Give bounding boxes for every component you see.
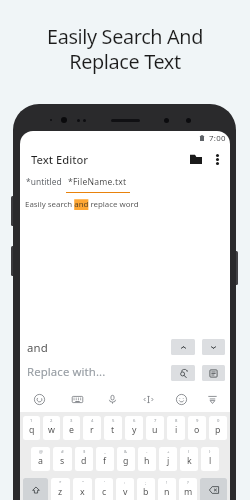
button[interactable]: Text editing bbox=[140, 391, 156, 407]
button[interactable]: Text Editor bbox=[31, 152, 89, 167]
button[interactable]: ; bbox=[137, 478, 155, 500]
button[interactable]: 9 bbox=[188, 416, 206, 440]
button[interactable]: - bbox=[138, 447, 156, 471]
button[interactable]: Voice input bbox=[104, 391, 120, 407]
staticText: 7:00 bbox=[209, 133, 226, 144]
staticText: " bbox=[82, 480, 84, 486]
staticText: : bbox=[124, 480, 126, 486]
staticText: h bbox=[144, 455, 150, 467]
staticText: 2 bbox=[50, 418, 53, 424]
staticText: *untitled bbox=[26, 176, 62, 187]
staticText: 4 bbox=[91, 418, 94, 424]
button[interactable]: Replace with... bbox=[27, 364, 106, 380]
staticText: a bbox=[38, 455, 43, 467]
staticText: w bbox=[48, 424, 55, 436]
staticText: u bbox=[152, 424, 158, 436]
button[interactable]: Backspace bbox=[200, 478, 227, 500]
staticText: 5 bbox=[112, 418, 115, 424]
button[interactable]: ! bbox=[158, 478, 176, 500]
button[interactable]: ( bbox=[180, 447, 198, 471]
staticText: i bbox=[175, 424, 178, 436]
staticText: ; bbox=[145, 480, 147, 486]
button[interactable]: 1 bbox=[23, 416, 40, 440]
staticText: Easily search and replace word bbox=[25, 199, 139, 210]
staticText: 1 bbox=[30, 418, 33, 424]
button[interactable]: 8 bbox=[167, 416, 185, 440]
staticText: @ bbox=[39, 449, 43, 455]
staticText: s bbox=[60, 455, 65, 467]
button[interactable]: *FileName.txt bbox=[68, 176, 132, 193]
staticText: v bbox=[123, 486, 128, 498]
button[interactable]: Open file bbox=[187, 150, 205, 168]
staticText: n bbox=[164, 486, 170, 498]
button[interactable]: Keyboard layout bbox=[69, 391, 85, 407]
button[interactable]: 0 bbox=[209, 416, 227, 440]
button[interactable]: 4 bbox=[83, 416, 101, 440]
staticText: _ bbox=[104, 449, 106, 455]
staticText: 6 bbox=[133, 418, 136, 424]
staticText: e bbox=[69, 424, 74, 436]
button[interactable]: *untitled bbox=[26, 176, 62, 187]
button[interactable]: _ bbox=[96, 447, 114, 471]
button[interactable]: and bbox=[27, 340, 48, 356]
button[interactable]: * bbox=[51, 478, 70, 500]
button[interactable]: 7 bbox=[146, 416, 164, 440]
button[interactable]: ) bbox=[201, 447, 219, 471]
staticText: # bbox=[61, 449, 64, 455]
staticText: y bbox=[132, 424, 137, 436]
button[interactable]: # bbox=[53, 447, 72, 471]
staticText: 9 bbox=[196, 418, 199, 424]
staticText: ! bbox=[166, 480, 168, 486]
button[interactable]: Shift bbox=[23, 478, 48, 500]
button[interactable]: Glide typing bbox=[31, 391, 47, 407]
button[interactable]: @ bbox=[31, 447, 50, 471]
button[interactable]: + bbox=[159, 447, 177, 471]
staticText: 3 bbox=[70, 418, 73, 424]
staticText: Text Editor bbox=[31, 152, 89, 167]
button[interactable]: " bbox=[73, 478, 92, 500]
button[interactable]: 3 bbox=[63, 416, 80, 440]
staticText: - bbox=[146, 449, 148, 455]
staticText: q bbox=[29, 424, 35, 436]
button[interactable]: 6 bbox=[125, 416, 143, 440]
button[interactable]: Find previous bbox=[171, 339, 195, 355]
staticText: p bbox=[215, 424, 221, 436]
staticText: b bbox=[143, 486, 149, 498]
staticText: 8 bbox=[175, 418, 178, 424]
staticText: and bbox=[27, 340, 48, 356]
staticText: * bbox=[59, 480, 62, 486]
staticText: ( bbox=[188, 449, 190, 455]
staticText: f bbox=[103, 455, 107, 467]
staticText: x bbox=[80, 486, 85, 498]
staticText: g bbox=[123, 455, 129, 467]
staticText: l bbox=[209, 455, 212, 467]
staticText: ? bbox=[187, 480, 189, 486]
button[interactable]: Emoji bbox=[173, 391, 189, 407]
button[interactable]: Keyboard settings bbox=[204, 391, 220, 407]
button[interactable]: ' bbox=[95, 478, 113, 500]
button[interactable]: $ bbox=[75, 447, 93, 471]
staticText: Easily Search And bbox=[47, 23, 203, 50]
button[interactable]: Replace all bbox=[202, 365, 225, 381]
button[interactable]: More options bbox=[208, 150, 226, 168]
button[interactable]: : bbox=[116, 478, 134, 500]
button[interactable]: 2 bbox=[43, 416, 60, 440]
staticText: z bbox=[58, 486, 63, 498]
button[interactable]: 5 bbox=[104, 416, 122, 440]
staticText: o bbox=[194, 424, 200, 436]
button[interactable]: Replace bbox=[171, 365, 195, 381]
staticText: $ bbox=[83, 449, 86, 455]
staticText: Replace Text bbox=[69, 48, 181, 75]
staticText: + bbox=[167, 449, 170, 455]
button[interactable]: ? bbox=[179, 478, 197, 500]
button[interactable]: Find next bbox=[202, 339, 225, 355]
staticText: *FileName.txt bbox=[68, 176, 127, 188]
staticText: r bbox=[90, 424, 94, 436]
staticText: k bbox=[187, 455, 192, 467]
staticText: & bbox=[124, 449, 128, 455]
staticText: m bbox=[184, 486, 193, 498]
staticText: j bbox=[167, 455, 170, 467]
staticText: d bbox=[81, 455, 87, 467]
button[interactable]: & bbox=[117, 447, 135, 471]
staticText: t bbox=[111, 424, 115, 436]
